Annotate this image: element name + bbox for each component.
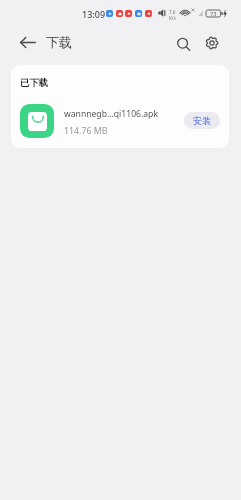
staticText: 13:09 xyxy=(82,8,106,20)
staticText: 安装 xyxy=(193,115,211,126)
staticText: 已下载 xyxy=(20,77,49,89)
button[interactable]: Settings xyxy=(199,30,225,56)
staticText: 7.6 xyxy=(169,9,176,15)
staticText: 114.76 MB xyxy=(64,125,108,137)
staticText: 下载 xyxy=(46,34,72,50)
button[interactable]: Search xyxy=(171,32,197,58)
button[interactable]: Back xyxy=(15,30,40,55)
staticText: K/s xyxy=(169,15,176,21)
button[interactable]: wannnegb...qi1106.apk xyxy=(11,95,229,145)
staticText: wannnegb...qi1106.apk xyxy=(64,108,158,120)
button[interactable]: 安装 xyxy=(184,112,220,129)
staticText: 73 xyxy=(210,10,217,17)
